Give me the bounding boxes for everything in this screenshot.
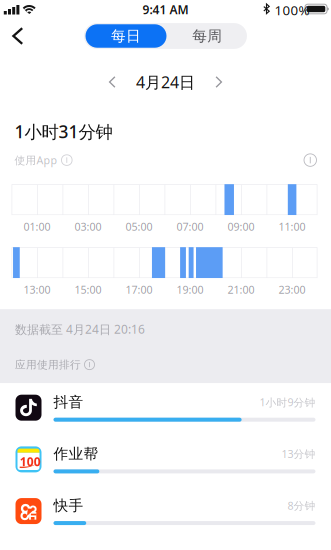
staticText: 17:00: [125, 283, 152, 297]
button[interactable]: Next day: [207, 68, 230, 96]
staticText: 9:41 AM: [142, 2, 188, 17]
button[interactable]: 快手: [0, 487, 331, 538]
staticText: 05:00: [125, 220, 152, 234]
staticText: 1小时31分钟: [14, 120, 112, 143]
staticText: 01:00: [23, 220, 50, 234]
button[interactable]: 每周: [168, 23, 247, 49]
staticText: 09:00: [227, 220, 254, 234]
staticText: 使用App: [14, 153, 57, 167]
button[interactable]: 每日: [84, 23, 168, 49]
button[interactable]: Previous day: [100, 68, 124, 96]
button[interactable]: 100: [0, 435, 331, 487]
staticText: 8分钟: [287, 498, 315, 513]
staticText: 21:00: [227, 283, 254, 297]
staticText: 100: [20, 454, 41, 469]
staticText: 作业帮: [53, 445, 98, 463]
staticText: 1小时9分钟: [259, 395, 315, 409]
staticText: 每周: [192, 27, 222, 45]
button[interactable]: Back: [0, 20, 38, 52]
staticText: 19:00: [176, 283, 203, 297]
staticText: 13:00: [23, 283, 50, 297]
staticText: 07:00: [176, 220, 203, 234]
staticText: 100%: [274, 1, 309, 19]
button[interactable]: 抖音: [0, 383, 331, 435]
staticText: 数据截至 4月24日 20:16: [15, 321, 145, 337]
staticText: 11:00: [278, 220, 305, 234]
staticText: 23:00: [278, 283, 305, 297]
staticText: 每日: [111, 27, 141, 45]
staticText: 03:00: [74, 220, 101, 234]
staticText: 13分钟: [281, 447, 315, 461]
staticText: 应用使用排行: [15, 358, 81, 371]
staticText: 抖音: [53, 393, 83, 411]
staticText: 15:00: [74, 283, 101, 297]
staticText: 快手: [53, 497, 83, 515]
staticText: 4月24日: [136, 71, 195, 93]
